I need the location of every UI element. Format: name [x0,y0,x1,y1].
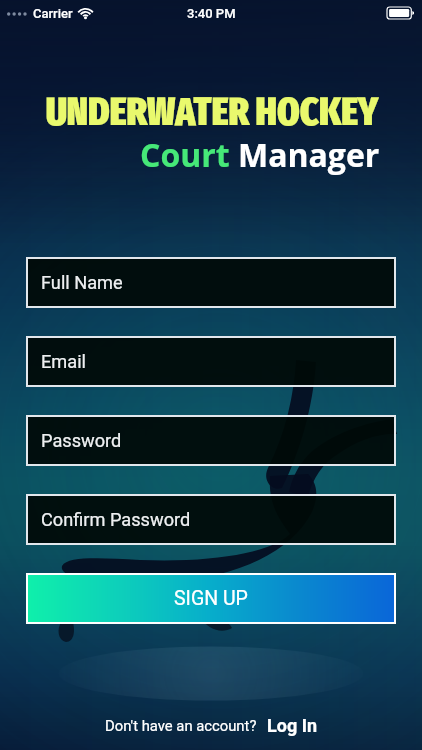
button[interactable]: Password [26,415,396,466]
button[interactable]: Confirm Password [26,494,396,545]
staticText: SIGN UP [174,587,248,610]
other: Battery [387,7,414,19]
staticText: Full Name [41,272,123,293]
staticText: Don't have an account? [105,717,257,734]
staticText: Password [41,430,122,451]
staticText: 3:40 PM [187,6,236,21]
staticText: Log In [267,715,318,736]
button[interactable]: Email [26,336,396,387]
staticText: Carrier [33,6,73,21]
button[interactable]: SIGN UP [26,573,396,624]
staticText: Court Manager [140,133,380,177]
staticText: Confirm Password [41,509,191,530]
button[interactable]: Don't have an account? [105,715,318,736]
staticText: Email [41,351,87,372]
staticText: UNDERWATER HOCKEY [46,89,379,136]
button[interactable]: Full Name [26,257,396,308]
